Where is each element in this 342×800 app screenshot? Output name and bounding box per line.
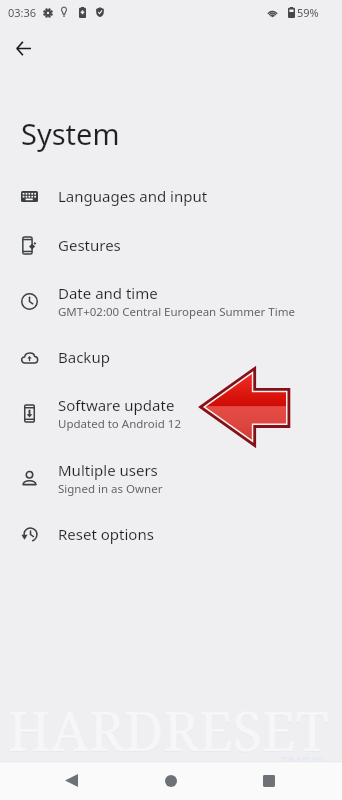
button[interactable]: Recents xyxy=(246,763,292,800)
staticText: Gestures xyxy=(58,235,121,255)
staticText: Multiple users xyxy=(58,460,158,480)
button[interactable]: Back xyxy=(48,763,94,800)
button[interactable]: Languages and input xyxy=(0,172,342,220)
staticText: HARDRESET xyxy=(8,693,329,767)
staticText: .INFO xyxy=(276,752,324,775)
staticText: Reset options xyxy=(58,524,154,544)
staticText: HARDRESET xyxy=(8,694,329,768)
staticText: 03:36 xyxy=(8,5,37,20)
button[interactable]: Backup xyxy=(0,333,342,381)
staticText: Date and time xyxy=(58,283,158,303)
button[interactable]: Software update xyxy=(0,381,342,445)
staticText: System xyxy=(21,114,120,153)
staticText: Software update xyxy=(58,395,175,415)
staticText: Backup xyxy=(58,347,110,367)
button[interactable]: Back xyxy=(3,28,43,68)
button[interactable]: Multiple users xyxy=(0,446,342,510)
staticText: Updated to Android 12 xyxy=(58,416,181,432)
button[interactable]: Date and time xyxy=(0,269,342,333)
staticText: Signed in as Owner xyxy=(58,481,163,497)
button[interactable]: Reset options xyxy=(0,510,342,558)
staticText: GMT+02:00 Central European Summer Time xyxy=(58,304,295,320)
button[interactable]: Home xyxy=(148,763,194,800)
button[interactable]: Gestures xyxy=(0,221,342,269)
staticText: Languages and input xyxy=(58,186,208,206)
staticText: 59% xyxy=(297,5,319,20)
